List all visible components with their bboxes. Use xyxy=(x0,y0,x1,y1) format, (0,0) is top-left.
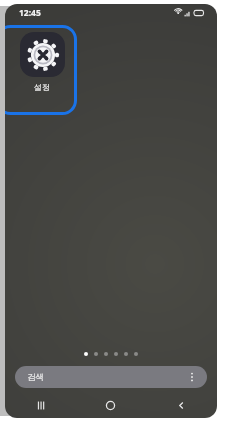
button[interactable]: Home xyxy=(75,395,146,415)
button[interactable]: 설정 xyxy=(15,32,69,92)
button[interactable]: Back xyxy=(146,395,217,415)
button[interactable]: 검색 xyxy=(15,366,207,388)
staticText: 검색 xyxy=(27,372,44,383)
button[interactable]: Recent apps xyxy=(5,395,75,415)
staticText: 설정 xyxy=(15,82,69,92)
staticText: 12:45 xyxy=(19,7,41,19)
button[interactable]: More options xyxy=(186,371,198,383)
